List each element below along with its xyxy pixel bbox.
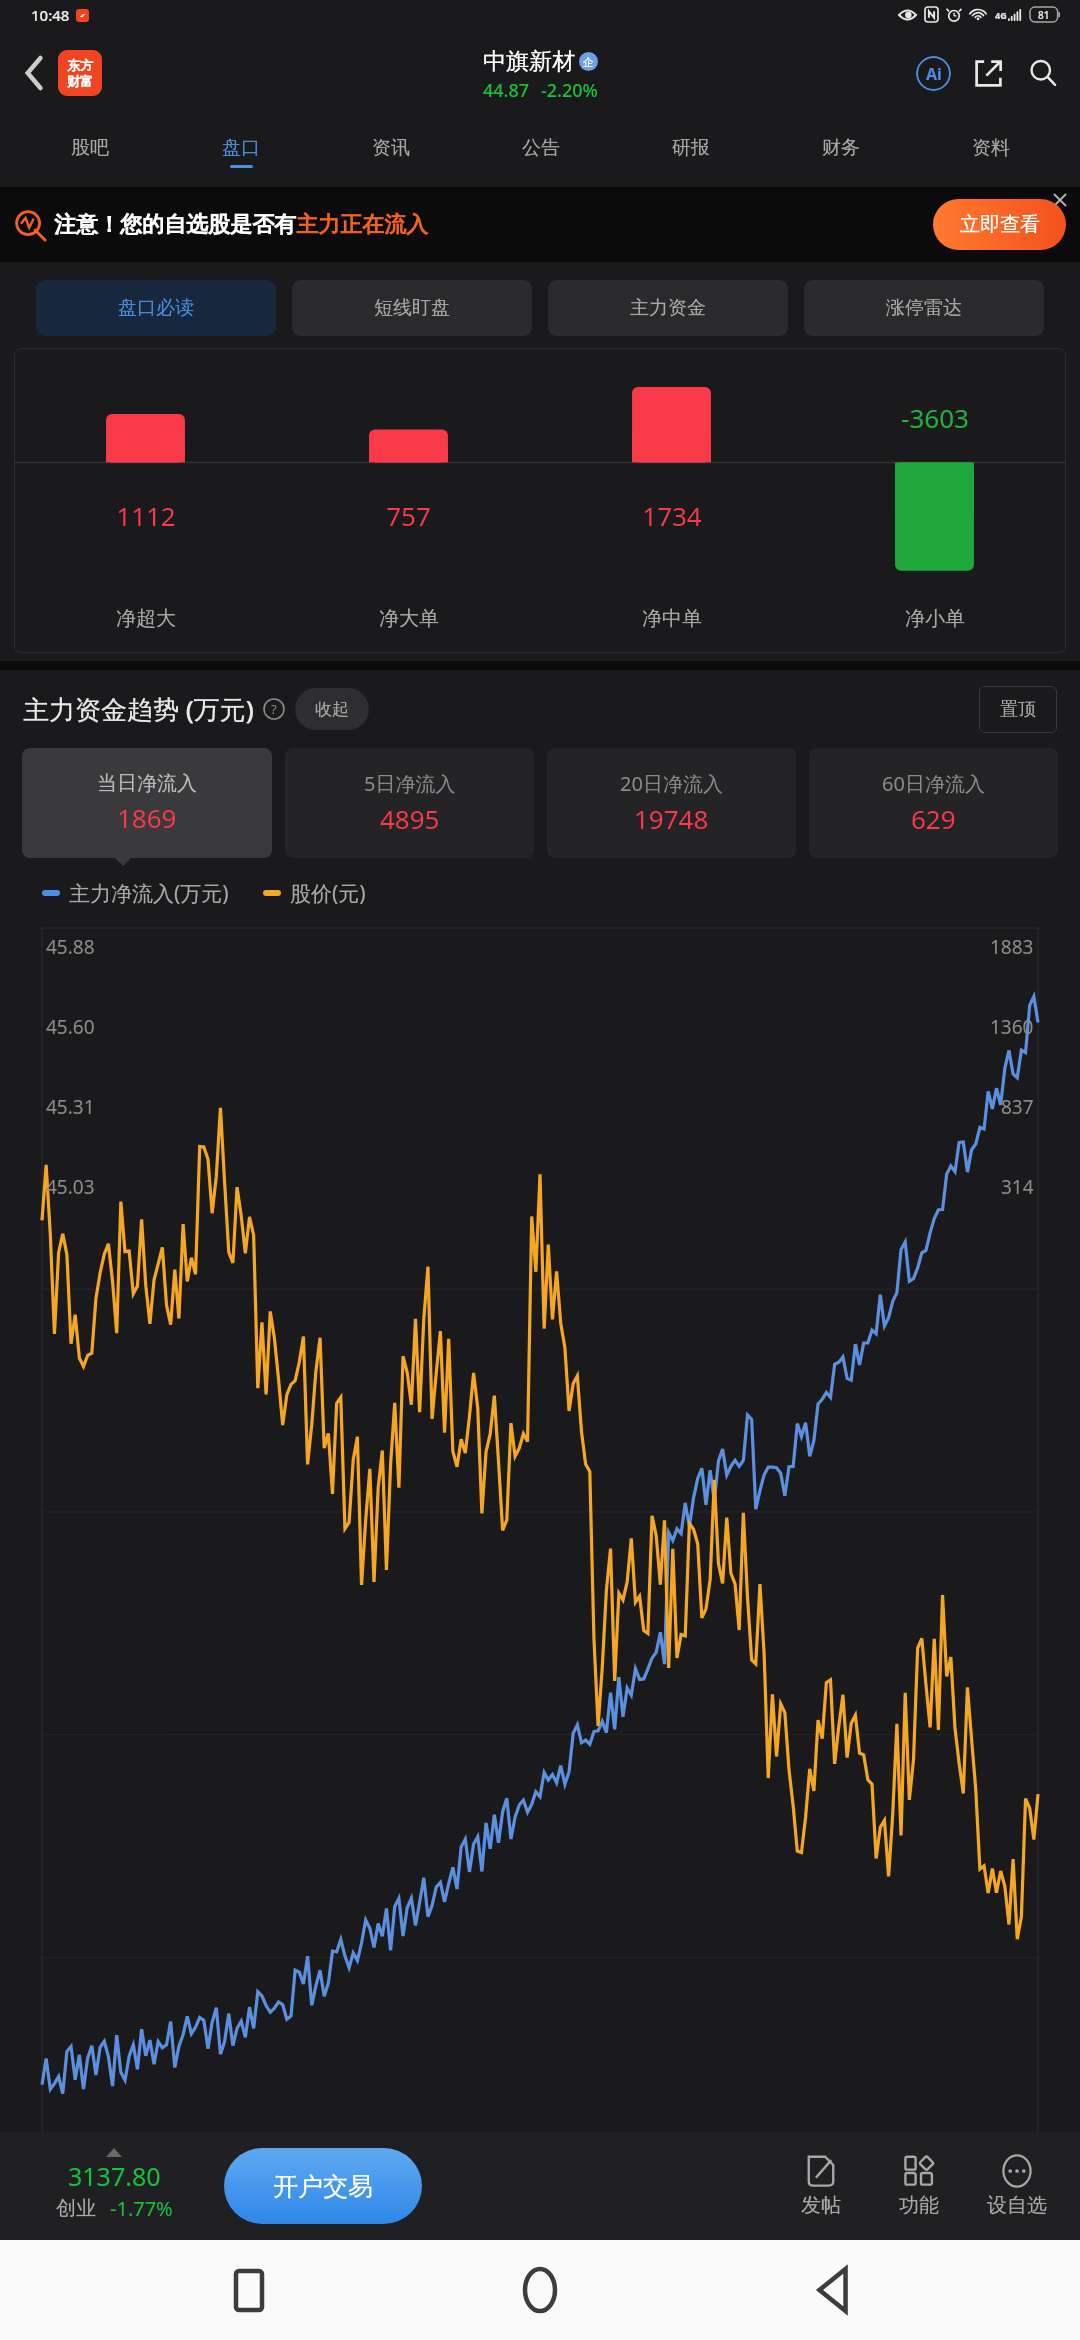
staticText: 10:48 [31,5,70,25]
button[interactable]: 5日净流入 [285,748,534,858]
staticText: 注意！ [54,211,120,239]
button[interactable]: 主力资金 [548,280,788,336]
staticText: 5日净流入 [364,770,456,797]
staticText: 20日净流入 [620,770,723,797]
button[interactable]: Share [965,50,1011,96]
button[interactable]: 置顶 [979,686,1057,733]
staticText: 45.03 [46,1174,95,1200]
staticText: 公告 [522,136,560,160]
button[interactable]: Search [1020,50,1066,96]
staticText: 4895 [380,801,440,836]
staticText: 股价(元) [290,879,366,908]
staticText: 1360 [990,1014,1034,1040]
staticText: 45.60 [46,1014,95,1040]
staticText: 1883 [990,934,1034,960]
staticText: 企 [583,55,594,69]
button[interactable]: 盘口必读 [36,280,276,336]
button[interactable]: 当日净流入 [22,748,272,858]
staticText: 功能 [899,2193,939,2218]
button[interactable]: 涨停雷达 [804,280,1044,336]
button[interactable]: 研报 [616,116,766,187]
staticText: 置顶 [1000,698,1036,721]
button[interactable]: 3137.80 [14,2150,214,2222]
button[interactable]: 开户交易 [224,2148,422,2224]
button[interactable]: Help [263,698,285,720]
staticText: 股吧 [71,136,109,160]
button[interactable]: 立即查看 [933,199,1066,250]
staticText: 财务 [822,136,860,160]
button[interactable]: Recents [206,2247,292,2333]
staticText: -3603 [901,400,969,435]
staticText: 1869 [117,800,177,835]
staticText: -2.20% [541,78,598,103]
staticText: 收起 [315,699,349,720]
staticText: -1.77% [110,2195,173,2222]
button[interactable]: 资料 [916,116,1066,187]
button[interactable]: AI [910,50,956,96]
button[interactable]: 60日净流入 [809,748,1058,858]
staticText: 45.31 [46,1094,95,1120]
staticText: 主力净流入(万元) [69,879,229,908]
staticText: 涨停雷达 [886,296,962,320]
staticText: 1112 [116,498,176,533]
staticText: 81 [1038,8,1050,22]
staticText: 盘口必读 [118,296,194,320]
staticText: 当日净流入 [97,771,197,796]
button[interactable]: 公告 [466,116,616,187]
button[interactable]: 东方 [58,50,102,96]
button[interactable]: 设自选 [968,2132,1066,2240]
button[interactable]: 财务 [766,116,916,187]
staticText: ? [271,700,277,718]
button[interactable]: 收起 [295,688,369,730]
staticText: 净中单 [642,606,702,631]
staticText: 创业 [56,2196,96,2221]
staticText: 主力正在流入 [296,211,428,239]
staticText: 757 [386,498,431,533]
button[interactable]: Close [1048,188,1072,212]
staticText: 资讯 [372,136,410,160]
button[interactable]: 股吧 [14,116,165,187]
staticText: 盘口 [222,136,260,160]
staticText: Ai [926,63,942,85]
staticText: 财富 [67,73,93,89]
staticText: 314 [1001,1174,1034,1200]
staticText: 短线盯盘 [374,296,450,320]
staticText: 净大单 [379,606,439,631]
button[interactable]: 发帖 [772,2132,870,2240]
button[interactable]: Back [789,2247,875,2333]
staticText: 立即查看 [960,212,1040,237]
staticText: 净超大 [116,606,176,631]
staticText: 629 [911,801,956,836]
staticText: 19748 [634,801,709,836]
staticText: 设自选 [987,2193,1047,2218]
button[interactable]: 资讯 [316,116,466,187]
staticText: 主力资金 [630,296,706,320]
button[interactable]: 功能 [870,2132,968,2240]
staticText: 1734 [642,498,702,533]
staticText: 837 [1001,1094,1034,1120]
staticText: 中旗新材 [483,47,575,76]
staticText: 3137.80 [68,2159,161,2193]
staticText: 发帖 [801,2193,841,2218]
staticText: 您的自选股是否有 [120,211,296,239]
staticText: 东方 [67,57,93,73]
button[interactable]: Home [497,2247,583,2333]
staticText: 60日净流入 [882,770,985,797]
staticText: 45.88 [46,934,95,960]
staticText: 主力资金趋势 (万元) [23,691,254,727]
staticText: 净小单 [905,606,965,631]
staticText: 44.87 [483,78,530,103]
staticText: 资料 [972,136,1010,160]
button[interactable]: 1112 [14,348,1066,653]
button[interactable]: 20日净流入 [547,748,796,858]
staticText: 研报 [672,136,710,160]
button[interactable]: Back [10,49,58,97]
staticText: 4G [995,9,1007,21]
staticText: 开户交易 [273,2171,373,2202]
button[interactable]: 短线盯盘 [292,280,532,336]
button[interactable]: 盘口 [165,116,316,187]
